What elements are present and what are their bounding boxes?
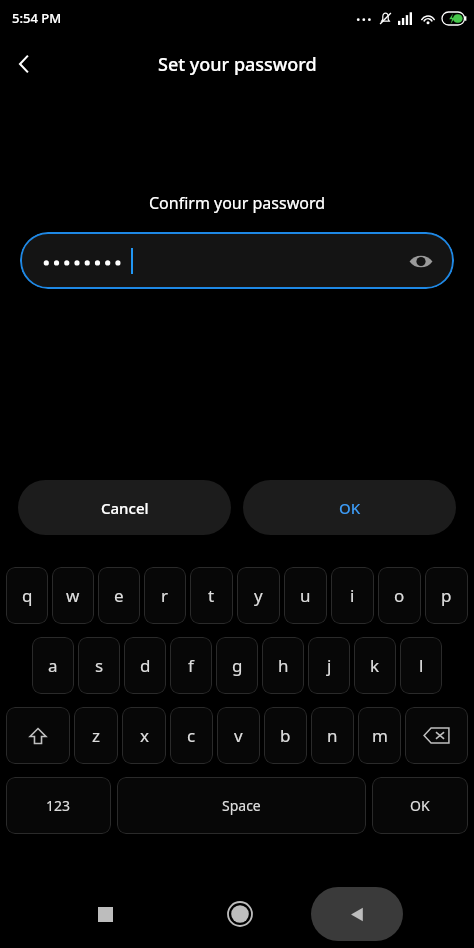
button[interactable]: y <box>237 567 280 624</box>
button[interactable]: Home <box>210 884 270 944</box>
button[interactable]: x <box>122 707 166 764</box>
staticText: Set your password <box>158 52 317 77</box>
staticText: h <box>278 654 289 677</box>
button[interactable]: i <box>331 567 374 624</box>
button[interactable]: v <box>217 707 260 764</box>
staticText: c <box>187 724 196 747</box>
staticText: d <box>140 654 151 677</box>
staticText: OK <box>410 796 430 815</box>
button[interactable]: a <box>32 637 74 694</box>
staticText: v <box>234 724 243 747</box>
staticText: 123 <box>46 796 71 815</box>
button[interactable]: g <box>216 637 258 694</box>
staticText: w <box>66 584 80 607</box>
staticText: q <box>22 584 33 607</box>
staticText: OK <box>339 498 361 518</box>
button[interactable]: Cancel <box>18 480 231 535</box>
button[interactable]: k <box>354 637 396 694</box>
staticText: i <box>350 584 355 607</box>
button[interactable]: Recents <box>75 884 135 944</box>
button[interactable]: Space <box>117 777 366 834</box>
staticText: k <box>370 654 380 677</box>
staticText: m <box>372 724 388 747</box>
button[interactable]: w <box>52 567 94 624</box>
button[interactable]: j <box>308 637 350 694</box>
button[interactable]: s <box>78 637 120 694</box>
staticText: Cancel <box>101 498 149 518</box>
button[interactable]: t <box>190 567 233 624</box>
button[interactable]: h <box>262 637 304 694</box>
button[interactable]: 123 <box>6 777 111 834</box>
staticText: j <box>327 654 332 677</box>
button[interactable]: f <box>170 637 212 694</box>
button[interactable]: OK <box>372 777 468 834</box>
button[interactable]: n <box>311 707 354 764</box>
button[interactable]: b <box>264 707 307 764</box>
button[interactable]: o <box>378 567 421 624</box>
button[interactable]: e <box>98 567 140 624</box>
staticText: b <box>280 724 291 747</box>
staticText: t <box>208 584 215 607</box>
button[interactable]: c <box>170 707 213 764</box>
button[interactable]: Backspace <box>405 707 468 764</box>
staticText: Space <box>222 796 261 815</box>
staticText: e <box>114 584 124 607</box>
staticText: g <box>232 654 243 677</box>
button[interactable]: q <box>6 567 48 624</box>
button[interactable]: z <box>74 707 118 764</box>
staticText: 5:54 PM <box>12 9 62 27</box>
staticText: r <box>161 584 169 607</box>
staticText: u <box>300 584 311 607</box>
button[interactable]: u <box>284 567 327 624</box>
button[interactable]: OK <box>243 480 456 535</box>
button[interactable]: Back <box>0 40 48 88</box>
staticText: o <box>394 584 405 607</box>
staticText: p <box>441 584 452 607</box>
staticText: y <box>254 584 263 607</box>
button[interactable]: Back <box>311 887 403 941</box>
staticText: a <box>48 654 58 677</box>
button[interactable]: Show password <box>404 244 438 278</box>
staticText: x <box>140 724 149 747</box>
button[interactable]: p <box>425 567 468 624</box>
button[interactable]: l <box>400 637 442 694</box>
staticText: f <box>188 654 194 677</box>
button[interactable]: Shift <box>6 707 70 764</box>
staticText: s <box>95 654 104 677</box>
staticText: n <box>327 724 338 747</box>
staticText: l <box>419 654 424 677</box>
button[interactable]: Show password <box>20 232 454 289</box>
button[interactable]: r <box>144 567 186 624</box>
staticText: Confirm your password <box>0 192 474 214</box>
staticText: z <box>92 724 100 747</box>
button[interactable]: m <box>358 707 401 764</box>
button[interactable]: d <box>124 637 166 694</box>
